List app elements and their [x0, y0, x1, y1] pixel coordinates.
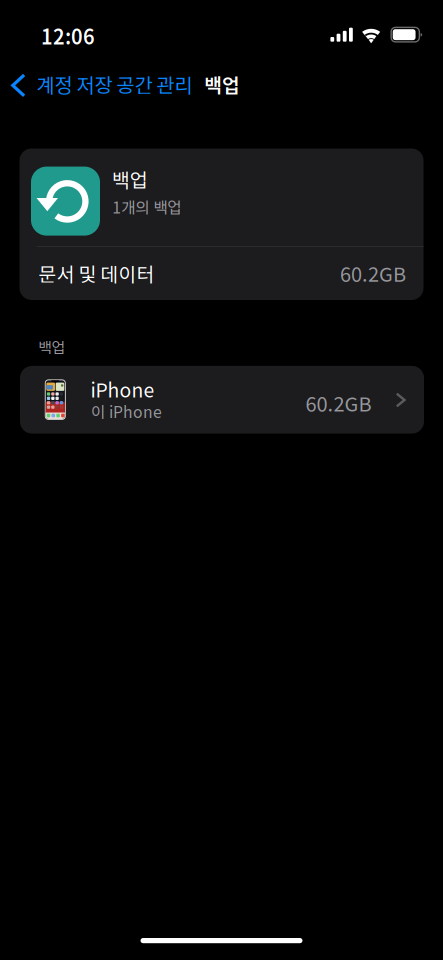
staticText: 백업 — [112, 165, 148, 193]
staticText: iPhone — [90, 375, 154, 403]
staticText: 60.2GB — [305, 388, 371, 417]
staticText: 1개의 백업 — [112, 195, 181, 218]
button[interactable]: 문서 및 데이터 — [19, 246, 423, 300]
button[interactable]: 계정 저장 공간 관리 — [0, 63, 195, 105]
staticText: 이 iPhone — [91, 400, 162, 422]
staticText: 60.2GB — [340, 258, 406, 287]
staticText: 문서 및 데이터 — [38, 259, 154, 287]
staticText: 백업 — [38, 336, 64, 357]
staticText: 계정 저장 공간 관리 — [36, 70, 192, 99]
button[interactable]: iPhone — [20, 366, 424, 434]
staticText: 12:06 — [41, 21, 95, 50]
staticText: 백업 — [204, 70, 240, 98]
